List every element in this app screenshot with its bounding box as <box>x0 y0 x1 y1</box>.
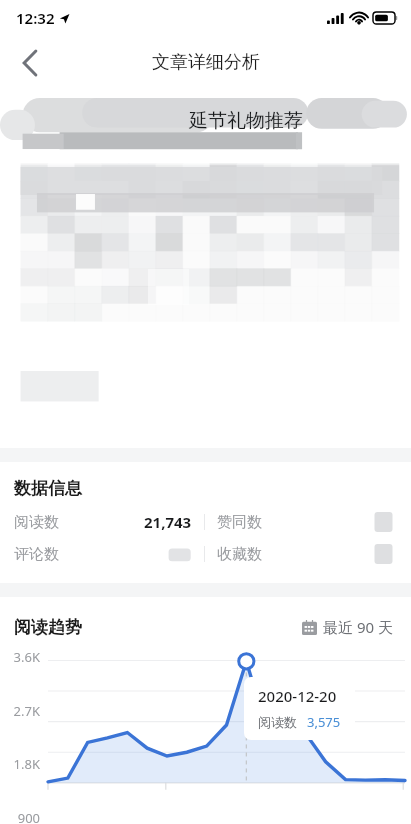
button[interactable]: Back <box>8 41 52 85</box>
staticText: 2020-12-20 <box>258 686 337 706</box>
staticText: 数据信息 <box>14 478 82 499</box>
staticText: 阅读数 <box>14 513 59 532</box>
staticText: 900 <box>0 809 40 824</box>
staticText: 收藏数 <box>217 545 262 564</box>
staticText: 阅读数 <box>258 714 297 730</box>
staticText: 3.6K <box>0 648 40 666</box>
staticText: 12:32 <box>16 8 55 28</box>
staticText: 文章详细分析 <box>152 51 260 74</box>
staticText: 21,743 <box>144 512 192 532</box>
staticText: 1.8K <box>0 755 40 773</box>
staticText: 3,575 <box>307 713 341 731</box>
staticText: 最近 90 天 <box>323 617 393 637</box>
staticText: 延节礼物推荐 <box>189 109 303 133</box>
staticText: 评论数 <box>14 545 59 564</box>
staticText: 2.7K <box>0 702 40 720</box>
staticText: 赞同数 <box>217 513 262 532</box>
button[interactable]: 最近 90 天 <box>298 613 397 641</box>
staticText: 阅读趋势 <box>14 617 82 638</box>
